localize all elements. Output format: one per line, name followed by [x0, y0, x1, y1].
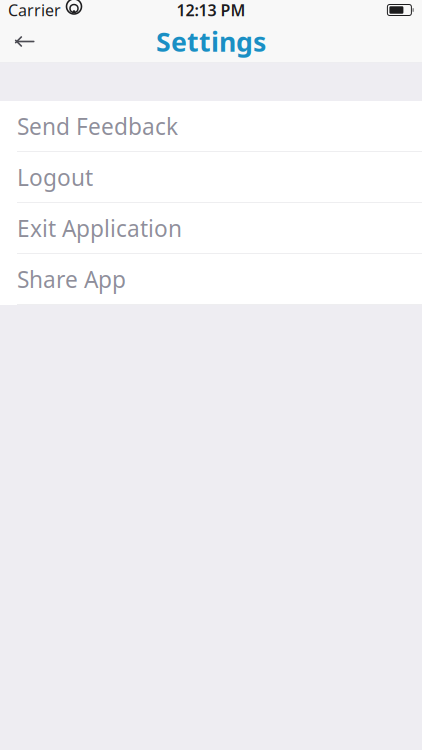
staticText: Carrier — [8, 0, 61, 21]
staticText: Settings — [156, 24, 266, 59]
button[interactable]: Logout — [0, 152, 422, 203]
staticText: 12:13 PM — [176, 0, 245, 21]
button[interactable]: Send Feedback — [0, 101, 422, 152]
button[interactable]: Back — [0, 20, 48, 63]
staticText: Share App — [17, 264, 126, 294]
staticText: Logout — [17, 162, 93, 192]
button[interactable]: Exit Application — [0, 203, 422, 254]
button[interactable]: Share App — [0, 254, 422, 305]
staticText: Send Feedback — [17, 111, 178, 141]
staticText: Exit Application — [17, 213, 182, 243]
